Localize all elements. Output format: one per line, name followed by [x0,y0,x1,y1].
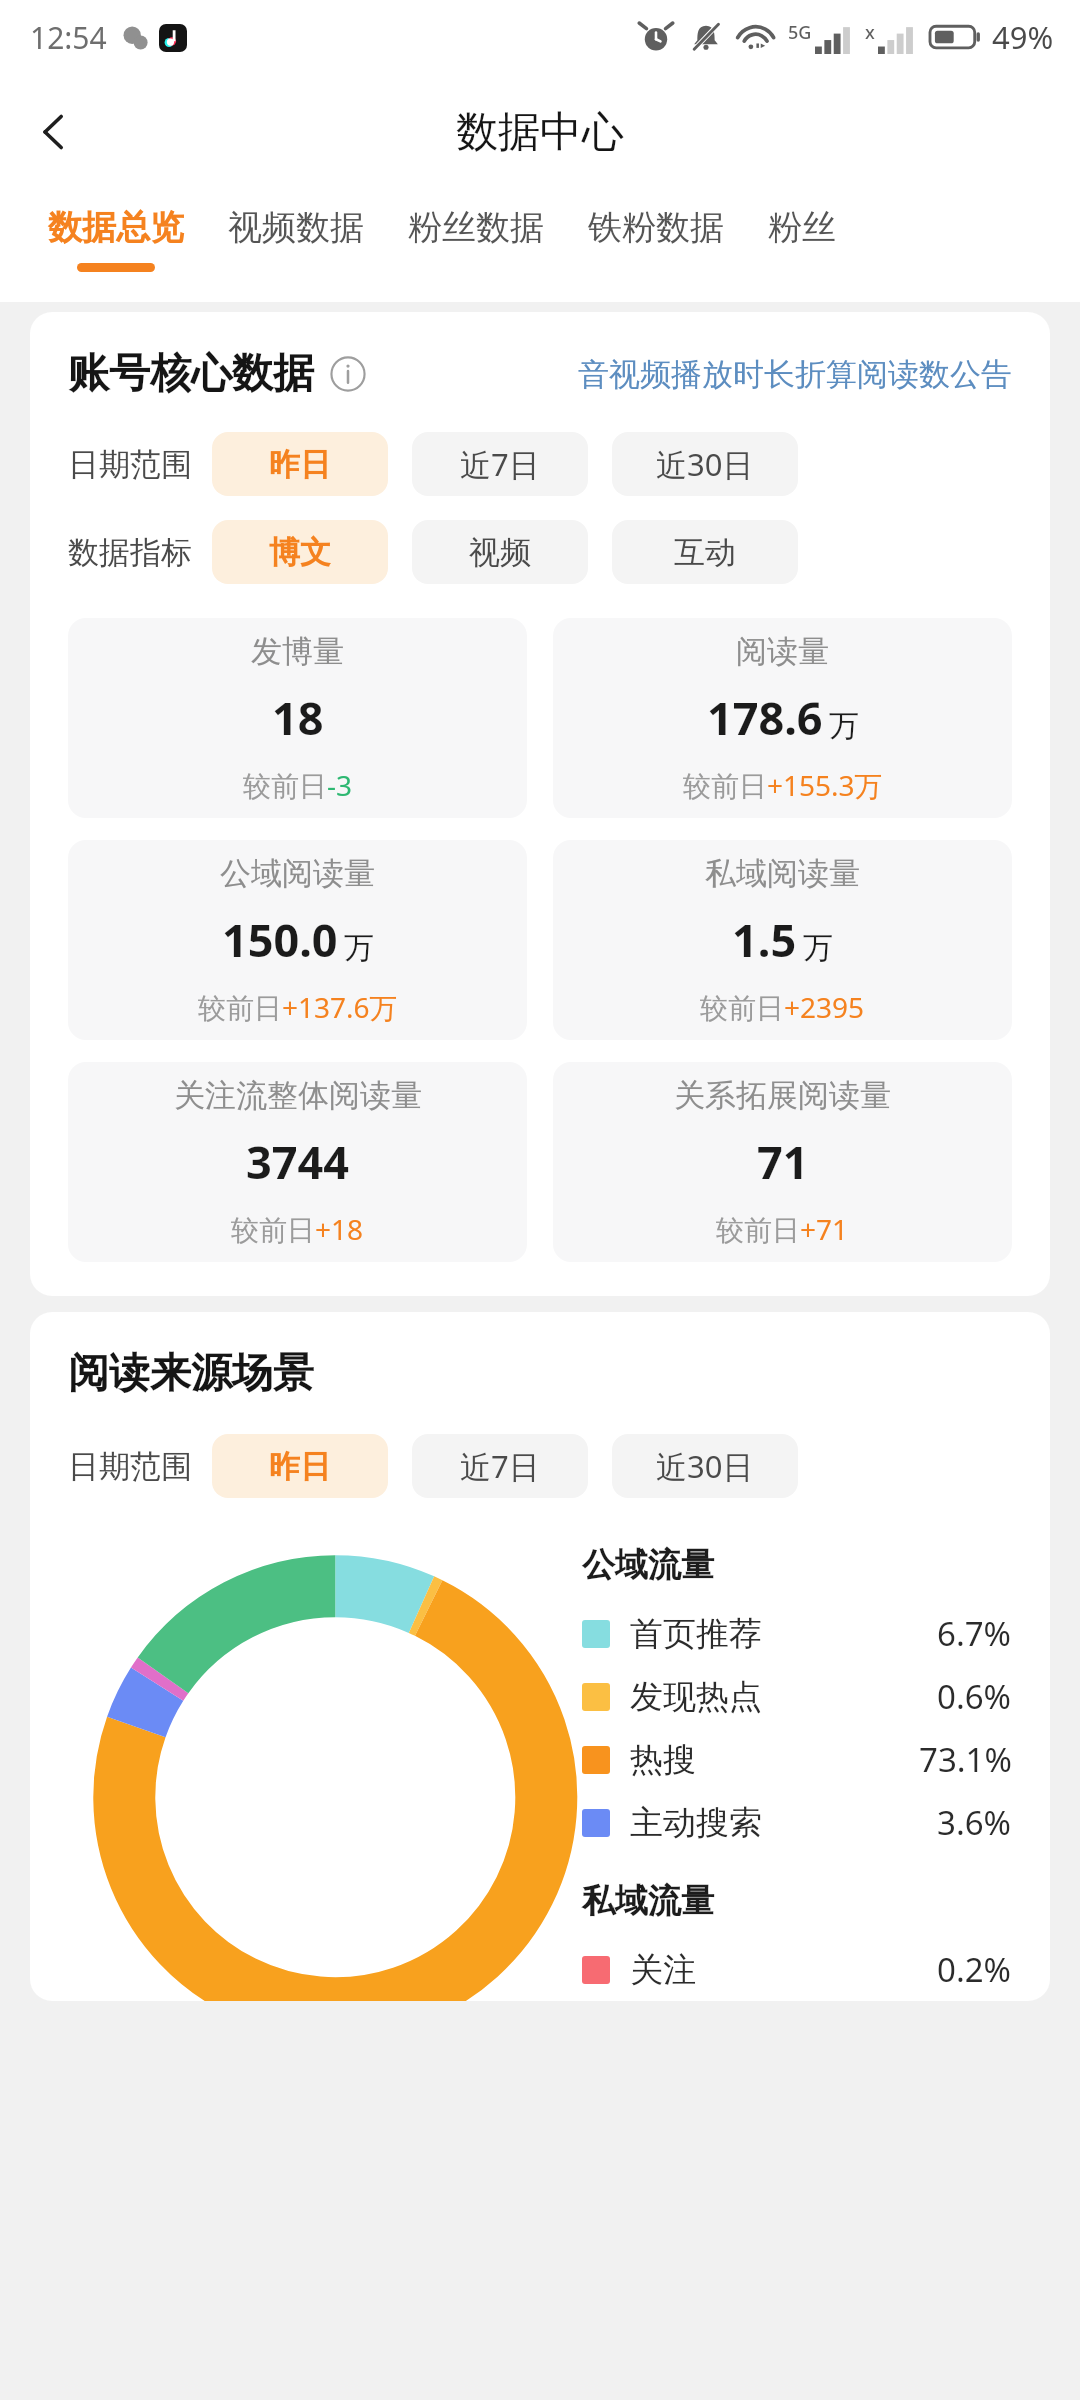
staticText: 71 [757,1131,809,1192]
staticText: 万 [829,707,859,745]
staticText: 视频数据 [228,206,364,249]
button[interactable]: 近30日 [612,1434,798,1498]
button[interactable]: 近30日 [612,432,798,496]
staticText: 昨日 [269,1447,331,1486]
staticText: 热搜 [630,1739,696,1781]
staticText: 公域阅读量 [220,854,375,893]
button[interactable]: 公域阅读量 [68,840,527,1040]
button[interactable]: 私域阅读量 [553,840,1012,1040]
staticText: 粉丝数据 [408,206,544,249]
button[interactable]: 发现热点 [582,1674,1012,1719]
button[interactable]: 数据总览 [26,206,206,272]
button[interactable]: 关注 [582,1947,1012,1992]
staticText: 近30日 [656,1445,754,1487]
staticText: 关注流整体阅读量 [174,1076,422,1115]
staticText: 视频 [469,533,531,572]
button[interactable]: 热搜 [582,1737,1012,1782]
button[interactable]: 关系拓展阅读量 [553,1062,1012,1262]
staticText: 5G [788,20,812,45]
staticText: 阅读量 [736,632,829,671]
staticText: 关系拓展阅读量 [674,1076,891,1115]
button[interactable]: 博文 [212,520,388,584]
staticText: 较前日+155.3万 [683,766,883,804]
button[interactable]: 首页推荐 [582,1611,1012,1656]
button[interactable]: 关注流整体阅读量 [68,1062,527,1262]
button[interactable]: Info [328,354,368,394]
staticText: 3744 [246,1131,349,1192]
button[interactable]: 互动 [612,520,798,584]
staticText: 主动搜索 [630,1802,762,1844]
staticText: 近30日 [656,443,754,485]
button[interactable]: 阅读量 [553,618,1012,818]
button[interactable]: 近7日 [412,432,588,496]
staticText: 18 [272,687,324,748]
button[interactable]: 粉丝数据 [386,206,566,263]
button[interactable]: 粉丝 [746,206,858,263]
staticText: 昨日 [269,445,331,484]
staticText: 发博量 [251,632,344,671]
button[interactable]: 主动搜索 [582,1800,1012,1845]
staticText: 首页推荐 [630,1613,762,1655]
staticText: 73.1% [919,1737,1012,1782]
staticText: 私域阅读量 [705,854,860,893]
staticText: 互动 [674,533,736,572]
staticText: 日期范围 [68,1447,192,1486]
button[interactable]: 音视频播放时长折算阅读数公告 [578,355,1012,394]
staticText: 万 [803,929,833,967]
staticText: 较前日+137.6万 [198,988,398,1026]
staticText: 发现热点 [630,1676,762,1718]
staticText: 较前日+71 [716,1210,849,1248]
staticText: 数据中心 [456,106,624,159]
button[interactable]: Back [16,94,92,170]
staticText: 178.6 [707,687,823,748]
staticText: 近7日 [460,1445,540,1487]
staticText: 数据指标 [68,533,192,572]
staticText: 1.5 [732,909,797,970]
staticText: 3.6% [937,1800,1012,1845]
staticText: 0.6% [937,1674,1012,1719]
button[interactable]: 铁粉数据 [566,206,746,263]
staticText: 铁粉数据 [588,206,724,249]
staticText: x [865,20,875,45]
staticText: 公域流量 [582,1544,714,1586]
button[interactable]: 发博量 [68,618,527,818]
staticText: 日期范围 [68,445,192,484]
button[interactable]: 视频 [412,520,588,584]
staticText: 12:54 [30,17,107,58]
staticText: 6.7% [937,1611,1012,1656]
button[interactable]: 视频数据 [206,206,386,263]
staticText: 阅读来源场景 [68,1348,314,1400]
staticText: 较前日+2395 [700,988,865,1026]
staticText: 万 [344,929,374,967]
staticText: 150.0 [222,909,338,970]
staticText: 博文 [269,533,331,572]
staticText: 较前日+18 [231,1210,364,1248]
button[interactable]: 昨日 [212,432,388,496]
staticText: 私域流量 [582,1880,714,1922]
button[interactable]: 近7日 [412,1434,588,1498]
button[interactable]: 昨日 [212,1434,388,1498]
staticText: 49% [992,16,1054,58]
staticText: 近7日 [460,443,540,485]
staticText: 关注 [630,1949,696,1991]
staticText: 数据总览 [48,206,184,249]
staticText: 较前日-3 [243,766,353,804]
staticText: 粉丝 [768,206,836,249]
staticText: 0.2% [937,1947,1012,1992]
staticText: 音视频播放时长折算阅读数公告 [578,355,1012,394]
staticText: 账号核心数据 [68,348,314,400]
